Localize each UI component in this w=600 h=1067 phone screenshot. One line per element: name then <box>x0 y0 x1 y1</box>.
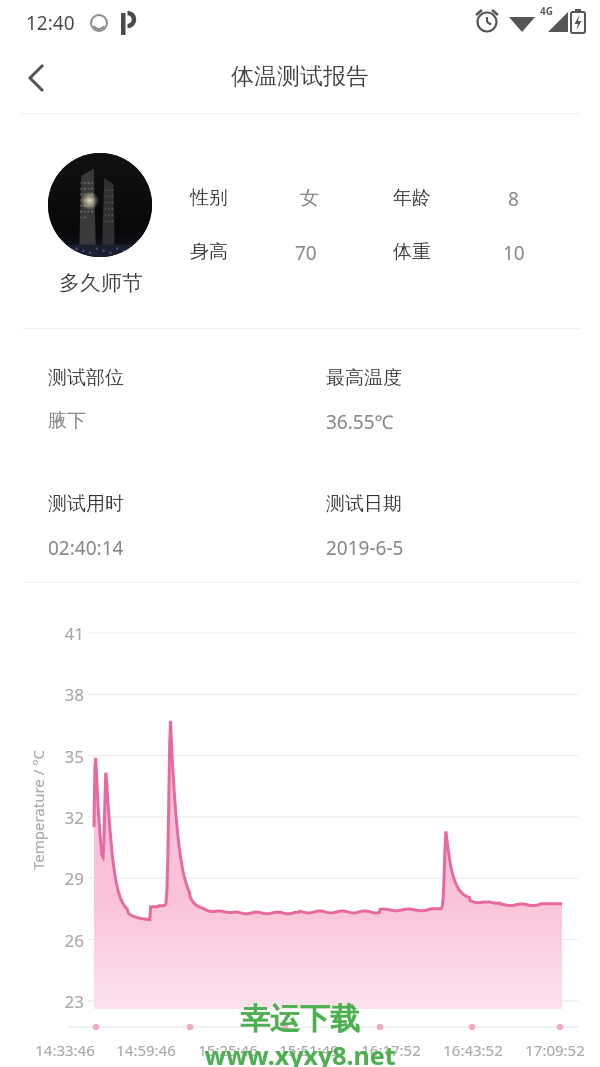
staticText: 4G <box>540 4 553 18</box>
staticText: 41 <box>54 622 84 645</box>
staticText: 14:59:46 <box>103 1040 189 1060</box>
staticText: 测试用时 <box>48 492 124 516</box>
staticText: 体重 <box>393 240 431 264</box>
staticText: 38 <box>54 683 84 706</box>
staticText: 26 <box>54 929 84 952</box>
staticText: 16:43:52 <box>430 1040 516 1060</box>
staticText: 32 <box>54 806 84 829</box>
staticText: 02:40:14 <box>48 535 124 561</box>
staticText: 8 <box>508 186 519 212</box>
staticText: 29 <box>54 867 84 890</box>
staticText: 女 <box>300 186 319 210</box>
staticText: 2019-6-5 <box>326 535 404 561</box>
staticText: 性别 <box>190 186 228 210</box>
staticText: 年龄 <box>393 186 431 210</box>
staticText: 身高 <box>190 240 228 264</box>
staticText: 12:40 <box>26 10 75 36</box>
staticText: 15:51:49 <box>266 1040 352 1060</box>
staticText: 测试日期 <box>326 492 402 516</box>
staticText: 多久师节 <box>46 270 156 296</box>
button[interactable]: Back <box>8 50 64 106</box>
staticText: 36.55℃ <box>326 409 394 435</box>
staticText: 体温测试报告 <box>0 62 600 91</box>
staticText: 35 <box>54 745 84 768</box>
staticText: 14:33:46 <box>22 1040 108 1060</box>
staticText: Temperature / °C <box>28 740 48 880</box>
staticText: 最高温度 <box>326 366 402 390</box>
staticText: 幸运下载 <box>0 1000 600 1038</box>
staticText: www.xyxy8.net <box>0 1038 600 1067</box>
staticText: 15:25:46 <box>185 1040 271 1060</box>
staticText: 16:17:52 <box>348 1040 434 1060</box>
staticText: 17:09:52 <box>512 1040 598 1060</box>
staticText: 23 <box>54 990 84 1013</box>
staticText: 10 <box>503 240 525 266</box>
staticText: 70 <box>295 240 317 266</box>
staticText: 测试部位 <box>48 366 124 390</box>
staticText: 腋下 <box>48 409 86 433</box>
